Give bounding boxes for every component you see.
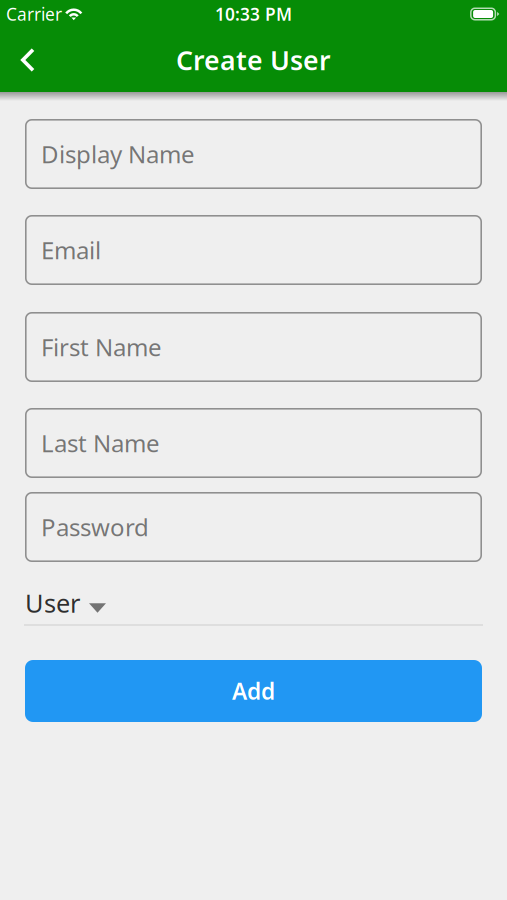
- button[interactable]: Email: [25, 215, 482, 285]
- staticText: User: [25, 586, 80, 620]
- staticText: 10:33 PM: [215, 2, 292, 25]
- button[interactable]: Password: [25, 492, 482, 562]
- staticText: Display Name: [41, 138, 195, 170]
- staticText: Carrier: [6, 2, 62, 25]
- staticText: Create User: [176, 42, 331, 78]
- staticText: Add: [232, 676, 275, 706]
- button[interactable]: Add: [25, 660, 482, 722]
- staticText: Last Name: [41, 427, 160, 459]
- button[interactable]: Last Name: [25, 408, 482, 478]
- staticText: First Name: [41, 331, 162, 363]
- button[interactable]: First Name: [25, 312, 482, 382]
- staticText: Email: [41, 234, 101, 266]
- button[interactable]: Display Name: [25, 119, 482, 189]
- button[interactable]: User: [24, 582, 483, 626]
- staticText: Password: [41, 511, 149, 543]
- button[interactable]: Back: [0, 28, 49, 92]
